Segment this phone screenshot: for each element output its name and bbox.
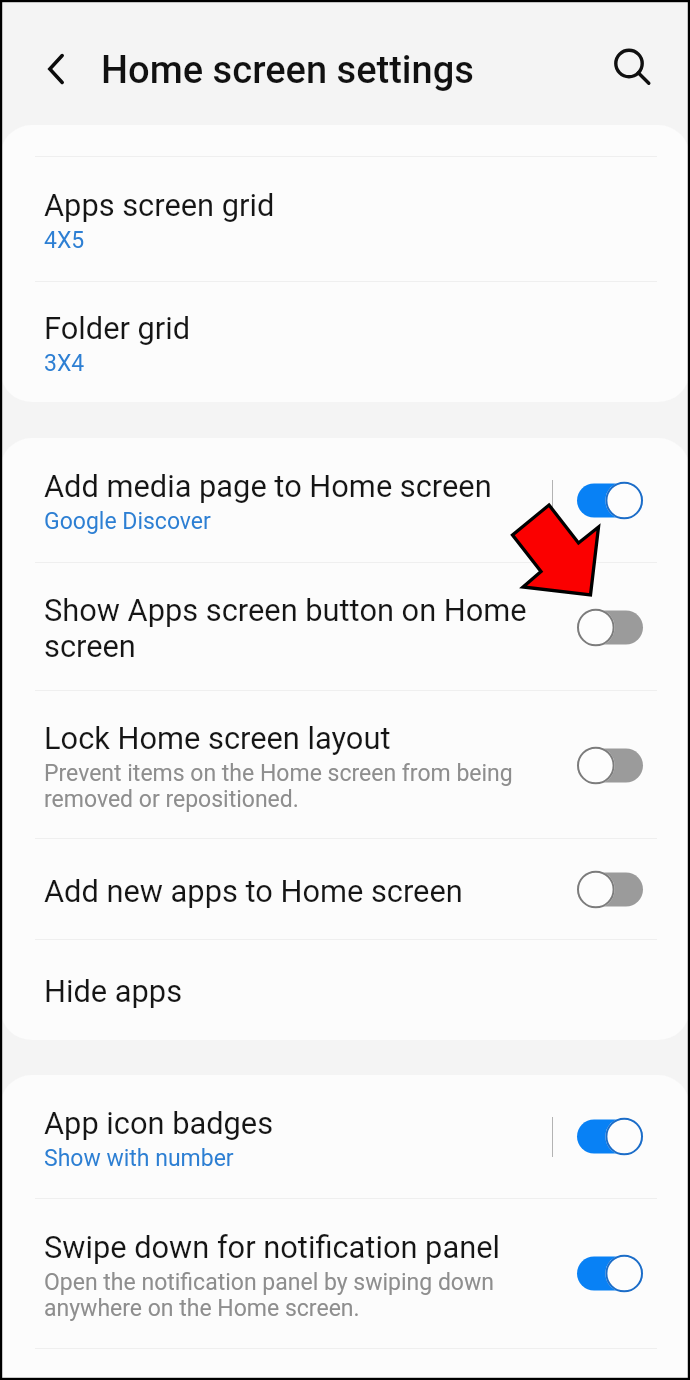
button[interactable]: Search [602, 39, 658, 95]
staticText: Google Discover [44, 508, 211, 534]
staticText: Lock Home screen layout [44, 720, 391, 756]
button[interactable]: Add new apps to Home screen [0, 839, 690, 940]
staticText: Show with number [44, 1145, 234, 1171]
button[interactable]: Swipe down for notification panel [0, 1199, 690, 1348]
button[interactable]: Switch on [553, 1075, 690, 1198]
staticText: Apps screen grid [44, 187, 275, 223]
staticText: App icon badges [44, 1105, 274, 1141]
staticText: Prevent items on the Home screen from be… [44, 760, 513, 812]
staticText: 3X4 [44, 350, 85, 376]
staticText: 4X5 [44, 227, 85, 253]
staticText: Hide apps [44, 973, 183, 1009]
staticText: Show Apps screen button on Home screen [44, 592, 527, 664]
button[interactable]: Switch on [553, 438, 690, 562]
staticText: Home screen settings [101, 48, 474, 92]
staticText: Add media page to Home screen [44, 468, 492, 504]
button[interactable]: Show Apps screen button on Home screen [0, 563, 690, 691]
button[interactable]: Folder grid [0, 282, 690, 402]
button[interactable]: Switch off [553, 691, 690, 839]
staticText: Open the notification panel by swiping d… [44, 1269, 494, 1321]
staticText: Folder grid [44, 310, 191, 346]
staticText: Swipe down for notification panel [44, 1229, 500, 1265]
button[interactable]: Switch off [553, 563, 690, 691]
button[interactable]: App icon badges [0, 1075, 690, 1198]
staticText: Add new apps to Home screen [44, 873, 463, 909]
button[interactable]: Switch on [553, 1199, 690, 1348]
button[interactable]: Lock Home screen layout [0, 691, 690, 839]
button[interactable]: Add media page to Home screen [0, 438, 690, 562]
button[interactable]: Hide apps [0, 940, 690, 1040]
button[interactable]: Switch off [553, 839, 690, 940]
button[interactable]: Apps screen grid [0, 157, 690, 281]
button[interactable]: Navigate back [28, 41, 84, 97]
